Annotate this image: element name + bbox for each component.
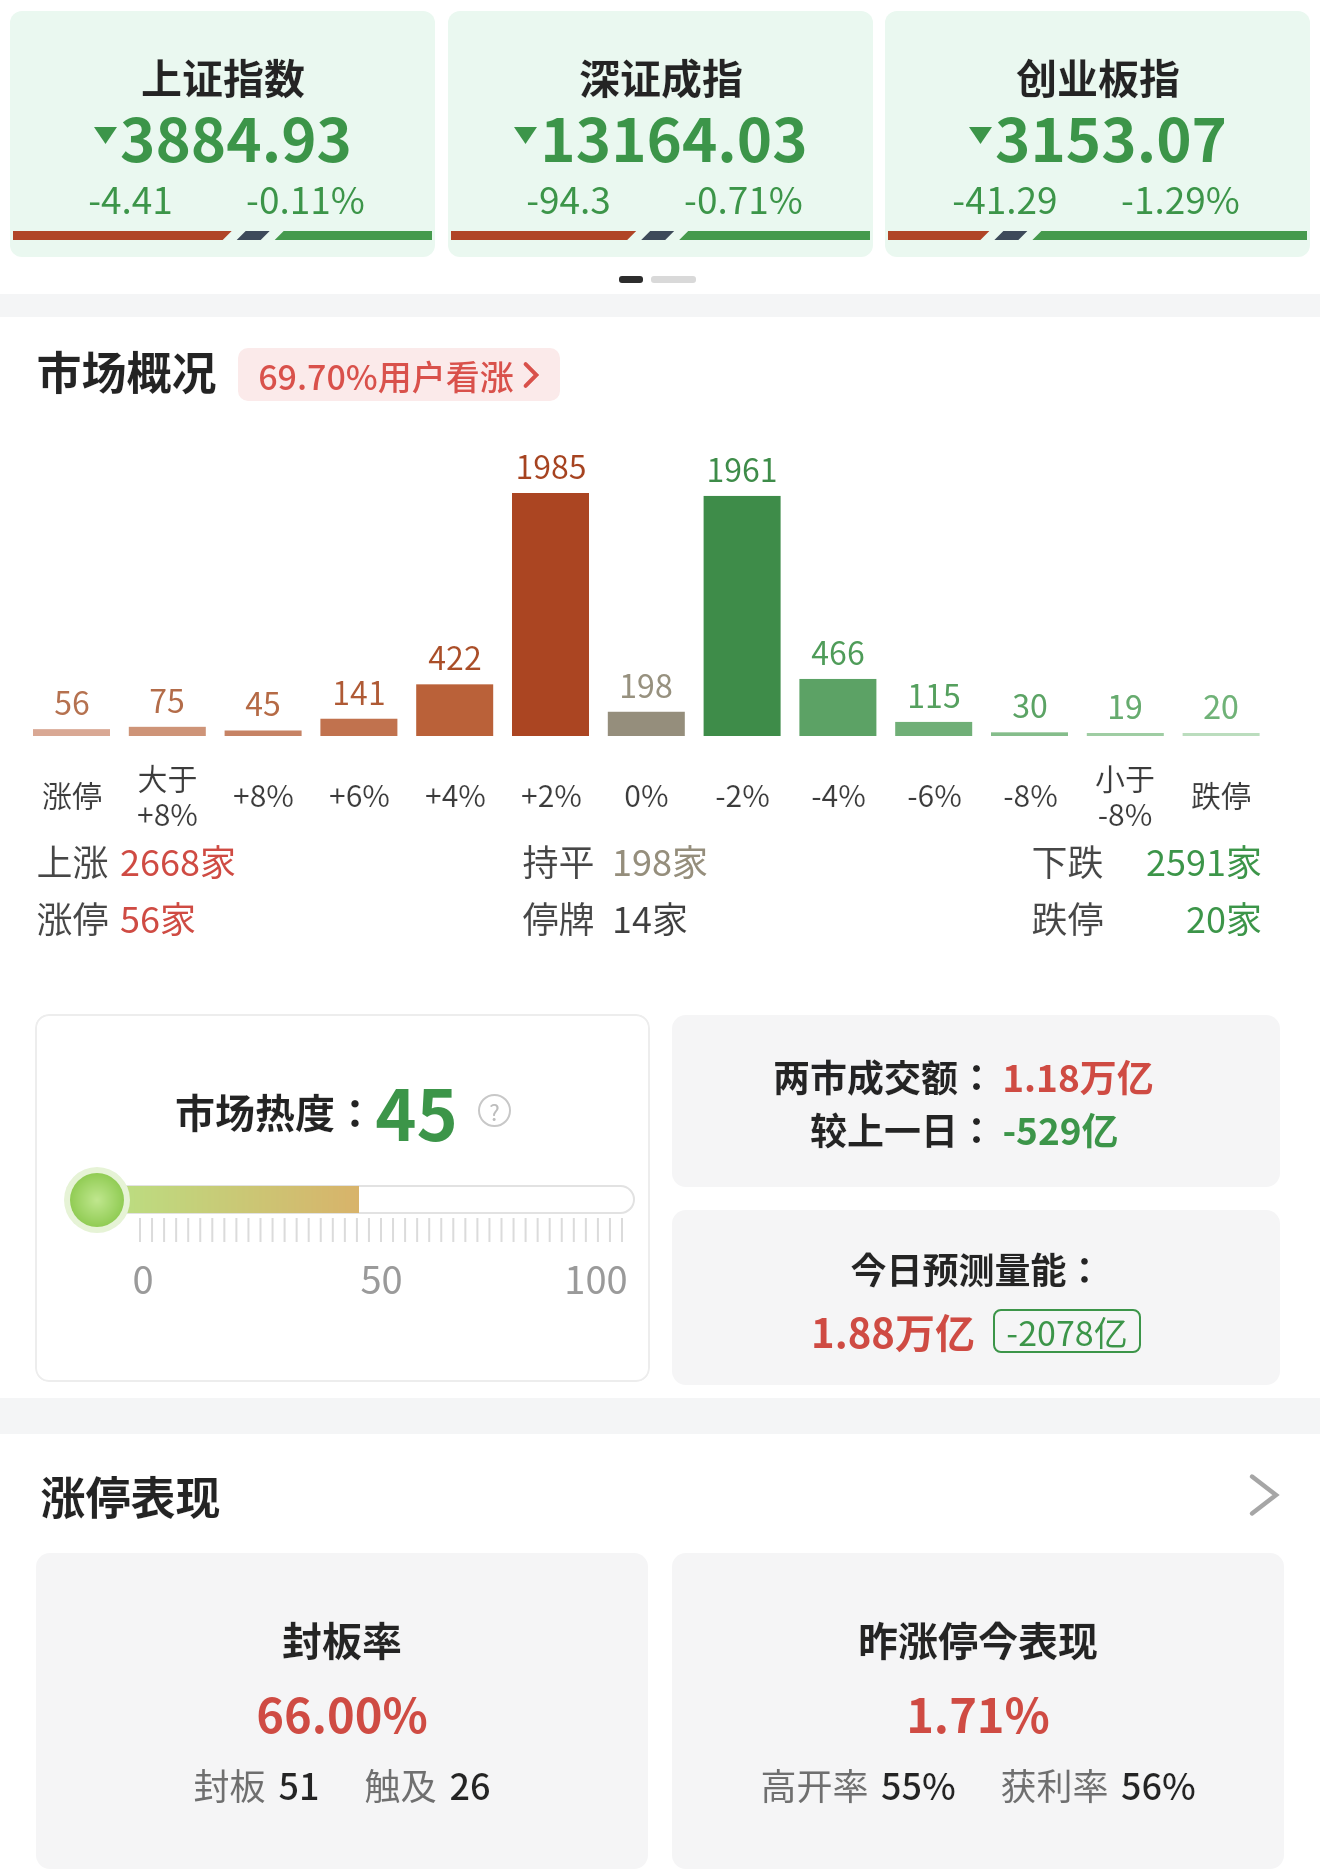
staticText: 深证成指 [579,46,743,105]
staticText: 45 [375,1060,458,1161]
staticText: +8% [233,772,294,815]
staticText: ? [489,1095,500,1127]
staticText: 获利率 [1000,1758,1109,1810]
button[interactable]: 69.70%用户看涨 [238,348,560,401]
staticText: +4% [425,772,486,815]
staticText: 两市成交额： [773,1049,995,1103]
staticText: 1.71% [906,1678,1050,1746]
staticText: -4.41 [88,171,173,225]
staticText: 56家 [120,891,196,943]
staticText: 19 [1107,682,1143,728]
staticText: 跌停 [1191,772,1251,815]
staticText: 上涨 [36,834,109,886]
staticText: 0 [132,1250,154,1305]
staticText: 55% [881,1758,956,1810]
staticText: -4% [811,772,866,815]
staticText: 69.70%用户看涨 [258,351,514,400]
button[interactable]: 昨涨停今表现 [672,1553,1284,1869]
staticText: 50 [360,1250,403,1305]
staticText: 1961 [706,445,778,491]
staticText: -2% [715,772,770,815]
staticText: -6% [907,772,962,815]
staticText: 持平 [522,834,595,886]
staticText: -2078亿 [1006,1307,1128,1356]
staticText: 115 [907,671,961,717]
button[interactable]: 两市成交额： [672,1015,1280,1187]
staticText: 198家 [612,834,708,886]
staticText: 创业板指 [1016,46,1180,105]
button[interactable]: 深证成指 [448,11,873,257]
staticText: 0% [624,772,669,815]
staticText: -529亿 [1002,1102,1119,1156]
button[interactable]: 创业板指 [885,11,1310,257]
staticText: 56 [54,678,90,724]
staticText: 66.00% [256,1678,428,1746]
staticText: 上证指数 [141,46,305,105]
staticText: +6% [329,772,390,815]
staticText: 涨停表现 [40,1463,221,1528]
staticText: 30 [1012,681,1048,727]
staticText: 51 [278,1758,320,1810]
staticText: 高开率 [760,1758,869,1810]
staticText: 1.88万亿 [811,1302,975,1360]
staticText: 封板 [193,1758,266,1810]
staticText: -0.71% [684,171,803,225]
staticText: 13164.03 [540,92,808,179]
staticText: 触及 [364,1758,437,1810]
staticText: 56% [1121,1758,1196,1810]
staticText: 涨停 [36,891,109,943]
staticText: 市场热度： [175,1082,375,1140]
staticText: 20家 [1186,891,1262,943]
staticText: 466 [811,628,865,674]
staticText: -41.29 [952,171,1058,225]
button[interactable]: 市场热度： [35,1014,650,1382]
staticText: 3153.07 [995,92,1227,179]
staticText: 2591家 [1146,834,1262,886]
staticText: 422 [428,633,482,679]
staticText: +2% [521,772,582,815]
button[interactable]: 今日预测量能： [672,1210,1280,1385]
staticText: 14家 [612,891,688,943]
staticText: 跌停 [1031,891,1104,943]
staticText: 1.18万亿 [1002,1049,1154,1103]
staticText: 市场概况 [36,338,217,403]
staticText: 20 [1203,682,1239,728]
button[interactable]: 涨停表现 [0,1455,1320,1535]
staticText: 75 [149,676,185,722]
button[interactable]: 封板率 [36,1553,648,1869]
staticText: 2668家 [120,834,236,886]
staticText: 1985 [515,442,587,488]
button[interactable]: 上证指数 [10,11,435,257]
staticText: 昨涨停今表现 [858,1610,1098,1668]
staticText: 下跌 [1031,834,1104,886]
staticText: 26 [449,1758,491,1810]
staticText: 100 [564,1250,628,1305]
staticText: 大于 +8% [137,755,198,834]
staticText: 小于 -8% [1095,755,1155,834]
staticText: -0.11% [246,171,365,225]
staticText: 涨停 [42,772,102,815]
staticText: -1.29% [1121,171,1240,225]
staticText: -8% [1003,772,1058,815]
staticText: 封板率 [282,1610,402,1668]
staticText: -94.3 [526,171,611,225]
staticText: 较上一日： [810,1102,995,1156]
staticText: 198 [619,661,673,707]
staticText: 3884.93 [120,92,352,179]
staticText: 45 [245,679,281,725]
staticText: 停牌 [522,891,595,943]
staticText: 今日预测量能： [850,1242,1103,1294]
staticText: 141 [332,668,386,714]
